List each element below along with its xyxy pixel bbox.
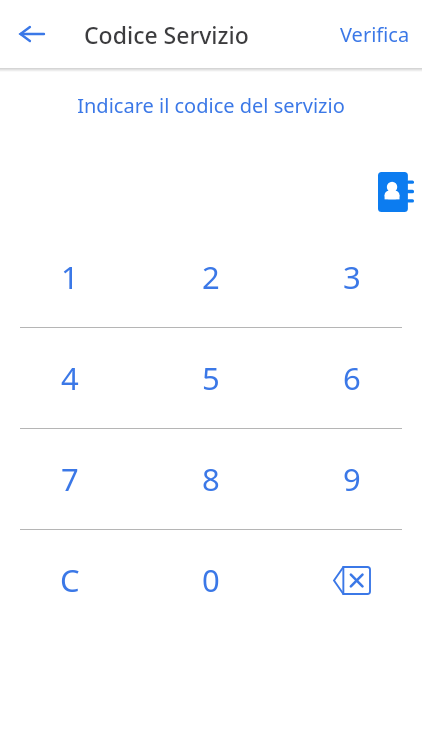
button[interactable]: 4 — [0, 328, 140, 428]
button[interactable]: 1 — [0, 227, 140, 327]
staticText: 3 — [343, 256, 361, 298]
button[interactable]: 2 — [140, 227, 281, 327]
staticText: 4 — [61, 357, 79, 399]
staticText: 6 — [343, 357, 361, 399]
staticText: Verifica — [340, 21, 410, 48]
staticText: 8 — [202, 458, 220, 500]
button[interactable]: Backspace — [281, 530, 422, 630]
staticText: 2 — [202, 256, 220, 298]
staticText: 1 — [61, 256, 79, 298]
staticText: Indicare il codice del servizio — [0, 92, 422, 119]
button[interactable]: 5 — [140, 328, 281, 428]
button[interactable]: 8 — [140, 429, 281, 529]
button[interactable]: C — [0, 530, 140, 630]
button[interactable]: Choose from contacts — [374, 170, 418, 214]
button[interactable]: Verifica — [334, 13, 416, 56]
button[interactable]: 0 — [140, 530, 281, 630]
staticText: 7 — [61, 458, 79, 500]
staticText: 0 — [202, 559, 220, 601]
staticText: 9 — [343, 458, 361, 500]
button[interactable]: Back — [8, 10, 56, 58]
button[interactable]: 7 — [0, 429, 140, 529]
staticText: 5 — [202, 357, 220, 399]
button[interactable]: 3 — [281, 227, 422, 327]
staticText: Codice Servizio — [84, 19, 249, 50]
staticText: C — [60, 559, 80, 601]
button[interactable]: 9 — [281, 429, 422, 529]
button[interactable]: 6 — [281, 328, 422, 428]
